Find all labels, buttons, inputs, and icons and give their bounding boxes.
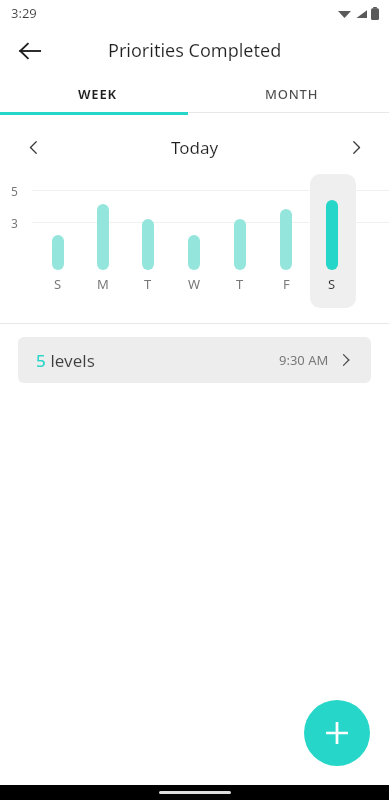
- staticText: levels: [46, 349, 95, 372]
- staticText: Today: [171, 136, 219, 159]
- staticText: W: [188, 275, 201, 293]
- staticText: MONTH: [265, 85, 319, 103]
- staticText: 9:30 AM: [279, 351, 329, 369]
- staticText: 5: [11, 183, 18, 199]
- staticText: F: [283, 275, 290, 293]
- button[interactable]: WEEK: [0, 75, 194, 112]
- button[interactable]: Next week: [339, 130, 373, 164]
- button[interactable]: Previous week: [16, 130, 50, 164]
- button[interactable]: Add: [304, 700, 370, 766]
- staticText: T: [144, 275, 152, 293]
- button[interactable]: 5: [18, 337, 371, 383]
- staticText: M: [97, 275, 109, 293]
- staticText: 5: [36, 349, 46, 372]
- button[interactable]: MONTH: [194, 75, 389, 112]
- staticText: S: [328, 275, 336, 293]
- staticText: Priorities Completed: [108, 38, 282, 63]
- staticText: S: [54, 275, 62, 293]
- button[interactable]: Back: [8, 29, 52, 73]
- staticText: T: [236, 275, 244, 293]
- staticText: 3: [11, 215, 18, 231]
- staticText: WEEK: [78, 85, 117, 103]
- staticText: 3:29: [11, 4, 37, 22]
